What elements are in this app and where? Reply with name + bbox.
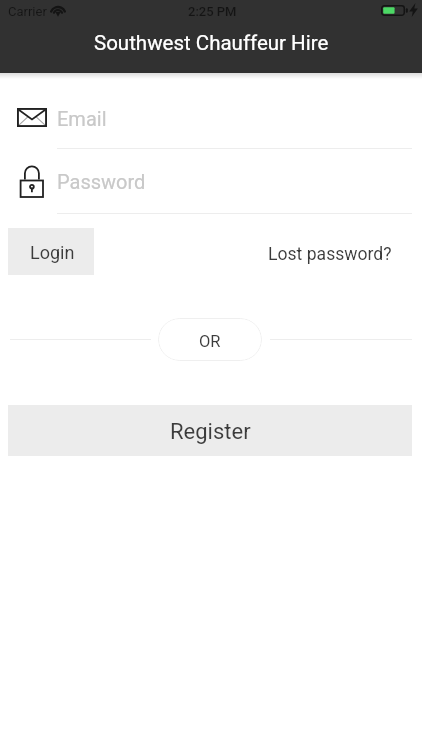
button[interactable]: Login bbox=[8, 228, 94, 275]
staticText: Login bbox=[30, 242, 75, 263]
staticText: Lost password? bbox=[268, 244, 392, 265]
staticText: 2:25 PM bbox=[188, 4, 237, 19]
other: Battery charging bbox=[381, 5, 408, 16]
other: Email bbox=[17, 108, 47, 127]
button[interactable]: Password bbox=[0, 161, 412, 214]
staticText: Carrier bbox=[8, 4, 47, 19]
staticText: Email bbox=[57, 107, 107, 130]
button[interactable]: Lost password? bbox=[268, 244, 392, 265]
button[interactable]: Email bbox=[0, 96, 412, 149]
staticText: OR bbox=[199, 332, 221, 351]
staticText: Password bbox=[57, 170, 146, 193]
button[interactable]: Register bbox=[8, 405, 412, 456]
other: Password bbox=[19, 165, 45, 199]
other: Wi-Fi bbox=[50, 3, 66, 15]
staticText: Register bbox=[170, 419, 251, 445]
staticText: Southwest Chauffeur Hire bbox=[94, 31, 329, 55]
